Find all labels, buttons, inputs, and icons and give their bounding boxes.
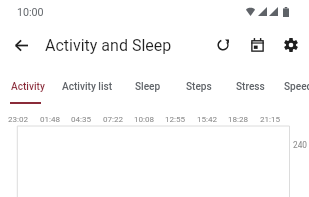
staticText: 21:15: [260, 114, 281, 123]
staticText: 15:42: [197, 114, 218, 123]
staticText: Activity list: [62, 81, 113, 93]
staticText: 10:08: [134, 114, 155, 123]
staticText: Speed: [284, 81, 309, 93]
staticText: 01:48: [40, 114, 61, 123]
staticText: 23:02: [8, 114, 29, 123]
button[interactable]: Refresh: [209, 31, 237, 59]
staticText: Sleep: [135, 81, 161, 93]
button[interactable]: Settings: [277, 31, 305, 59]
staticText: 12:55: [165, 114, 186, 123]
button[interactable]: Back: [7, 31, 35, 59]
staticText: 240: [293, 140, 307, 150]
staticText: Stress: [236, 81, 265, 93]
button[interactable]: Steps: [176, 70, 222, 104]
button[interactable]: Stress: [227, 70, 274, 104]
staticText: Activity: [11, 81, 45, 93]
button[interactable]: Activity list: [52, 70, 122, 104]
staticText: 07:22: [103, 114, 124, 123]
button[interactable]: Sleep: [125, 70, 170, 104]
button[interactable]: Calendar: [243, 31, 271, 59]
staticText: 10:00: [17, 6, 44, 19]
staticText: Activity and Sleep: [45, 36, 172, 55]
staticText: 04:35: [71, 114, 92, 123]
staticText: 18:28: [228, 114, 249, 123]
staticText: Steps: [186, 81, 212, 93]
button[interactable]: Speed: [275, 70, 309, 104]
button[interactable]: Activity: [1, 70, 54, 104]
